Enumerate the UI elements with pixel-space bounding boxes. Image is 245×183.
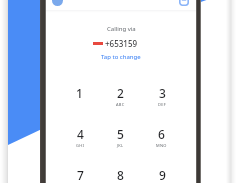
button[interactable]: Tap to change (101, 53, 141, 61)
staticText: ABC (116, 102, 125, 107)
button[interactable]: 9 (141, 167, 182, 183)
button[interactable]: Messages (179, 0, 189, 6)
button[interactable]: 5 (100, 126, 141, 148)
staticText: GHI (76, 143, 84, 148)
button[interactable]: 1 (59, 85, 100, 101)
staticText: 9 (159, 167, 166, 183)
button[interactable]: 6 (141, 126, 182, 148)
staticText: +653159 (105, 38, 138, 49)
button[interactable]: 4 (59, 126, 100, 148)
staticText: 7 (77, 167, 84, 183)
button[interactable]: 8 (100, 167, 141, 183)
staticText: DEF (158, 102, 166, 107)
button[interactable]: 7 (59, 167, 100, 183)
staticText: 4 (77, 126, 84, 142)
staticText: Calling via (107, 25, 136, 33)
staticText: JKL (117, 143, 124, 148)
button[interactable]: Account (52, 0, 63, 6)
staticText: 6 (158, 126, 165, 142)
button[interactable]: 3 (141, 85, 182, 107)
button[interactable]: 2 (100, 85, 141, 107)
staticText: 2 (117, 85, 124, 101)
staticText: 1 (76, 85, 83, 101)
staticText: MNO (156, 143, 167, 148)
staticText: 5 (117, 126, 124, 142)
staticText: 3 (159, 85, 166, 101)
staticText: 8 (117, 167, 124, 183)
